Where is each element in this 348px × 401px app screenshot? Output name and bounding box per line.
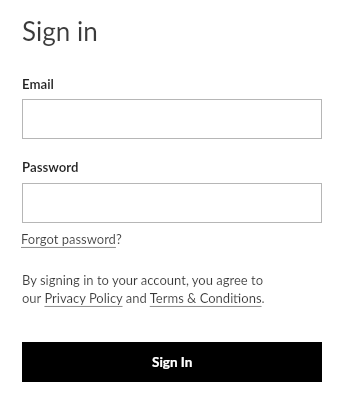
- button[interactable]: Forgot password?: [21, 231, 123, 250]
- staticText: Forgot password?: [21, 231, 122, 247]
- button[interactable]: Email input field: [22, 99, 322, 139]
- button[interactable]: Sign In: [22, 342, 322, 382]
- staticText: Email: [22, 76, 54, 92]
- staticText: Sign in: [22, 15, 98, 46]
- staticText: Sign In: [152, 354, 193, 370]
- button[interactable]: By signing in to your account, you agree…: [22, 272, 278, 306]
- button[interactable]: Password input field: [22, 183, 322, 223]
- staticText: Password: [22, 159, 79, 175]
